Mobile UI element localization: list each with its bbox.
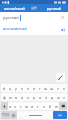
staticText: к [21, 86, 23, 91]
button[interactable]: Shift [1, 102, 8, 110]
button[interactable]: , [17, 111, 23, 119]
staticText: н [33, 86, 36, 91]
button[interactable]: о [37, 93, 43, 101]
staticText: и [31, 104, 34, 109]
staticText: ш [44, 86, 48, 91]
staticText: ю [55, 104, 58, 109]
staticText: ц [9, 86, 12, 91]
button[interactable]: с [18, 102, 23, 110]
button[interactable]: . [47, 111, 53, 119]
staticText: щ [50, 86, 54, 91]
staticText: р [33, 95, 36, 100]
button[interactable]: г [37, 84, 43, 92]
button[interactable]: б [47, 102, 53, 110]
button[interactable]: ф [1, 93, 7, 101]
button[interactable]: а [19, 93, 25, 101]
button[interactable]: ю [53, 102, 59, 110]
staticText: . [50, 113, 51, 118]
staticText: английский [4, 6, 25, 11]
button[interactable]: Backspace [59, 102, 67, 110]
button[interactable]: английский [0, 4, 28, 12]
button[interactable]: я [8, 102, 13, 110]
staticText: ы [9, 95, 12, 100]
button[interactable]: ш [43, 84, 49, 92]
staticText: х [63, 86, 65, 91]
staticText: ь [43, 104, 45, 109]
button[interactable]: ы [7, 93, 13, 101]
staticText: русский [47, 6, 62, 11]
button[interactable]: щ [49, 84, 55, 92]
button[interactable]: х [61, 84, 67, 92]
staticText: э [63, 95, 65, 100]
button[interactable]: русский [0, 12, 68, 23]
button[interactable]: ц [7, 84, 13, 92]
button[interactable]: Handwriting input [56, 73, 65, 82]
staticText: ч [14, 104, 17, 109]
button[interactable]: в [13, 93, 19, 101]
staticText: у [15, 86, 17, 91]
staticText: т [37, 104, 39, 109]
staticText: русский [3, 15, 19, 21]
staticText: с [20, 104, 22, 109]
button[interactable]: д [49, 93, 55, 101]
staticText: д [51, 95, 54, 100]
staticText: е [27, 86, 29, 91]
staticText: з [57, 86, 59, 91]
button[interactable]: английский [0, 23, 68, 35]
button[interactable]: й [1, 84, 7, 92]
button[interactable]: Clear text [58, 13, 67, 22]
button[interactable]: русский [40, 4, 68, 12]
button[interactable]: Space [23, 111, 47, 119]
button[interactable]: Swap languages [28, 4, 40, 12]
button[interactable]: к [19, 84, 25, 92]
button[interactable]: м [23, 102, 29, 110]
button[interactable]: ь [41, 102, 47, 110]
button[interactable]: Translate [53, 111, 67, 119]
button[interactable]: э [61, 93, 67, 101]
button[interactable]: ?123 [1, 111, 10, 119]
button[interactable]: Change keyboard language [10, 111, 17, 119]
button[interactable]: Listen [58, 25, 67, 34]
button[interactable]: н [31, 84, 37, 92]
button[interactable]: з [55, 84, 61, 92]
staticText: а [21, 95, 23, 100]
staticText: ж [57, 95, 60, 100]
staticText: ?123 [2, 113, 9, 117]
staticText: г [39, 86, 41, 91]
staticText: й [3, 86, 6, 91]
button[interactable]: е [25, 84, 31, 92]
staticText: ф [3, 95, 6, 100]
button[interactable]: р [31, 93, 37, 101]
staticText: английский [3, 26, 27, 32]
staticText: о [39, 95, 42, 100]
button[interactable]: и [29, 102, 35, 110]
staticText: в [15, 95, 18, 100]
button[interactable]: т [35, 102, 41, 110]
staticText: л [45, 95, 48, 100]
button[interactable]: ч [13, 102, 18, 110]
button[interactable]: ж [55, 93, 61, 101]
staticText: п [27, 95, 30, 100]
staticText: , [20, 113, 21, 118]
staticText: б [49, 104, 52, 109]
staticText: я [9, 104, 12, 109]
button[interactable]: л [43, 93, 49, 101]
button[interactable]: п [25, 93, 31, 101]
staticText: м [25, 104, 28, 109]
button[interactable]: у [13, 84, 19, 92]
